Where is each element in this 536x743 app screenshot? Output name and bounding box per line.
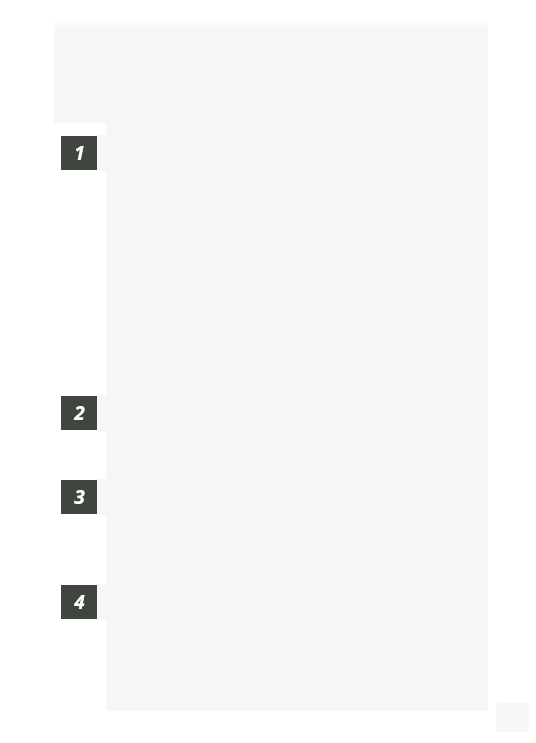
button[interactable]: 2 (61, 396, 97, 430)
staticText: 3 (74, 484, 85, 510)
staticText: 1 (74, 140, 85, 166)
button[interactable]: 3 (61, 480, 97, 514)
button[interactable]: 4 (61, 585, 97, 619)
staticText: 4 (74, 589, 85, 615)
button[interactable]: 1 (61, 136, 97, 170)
staticText: 2 (74, 400, 85, 426)
